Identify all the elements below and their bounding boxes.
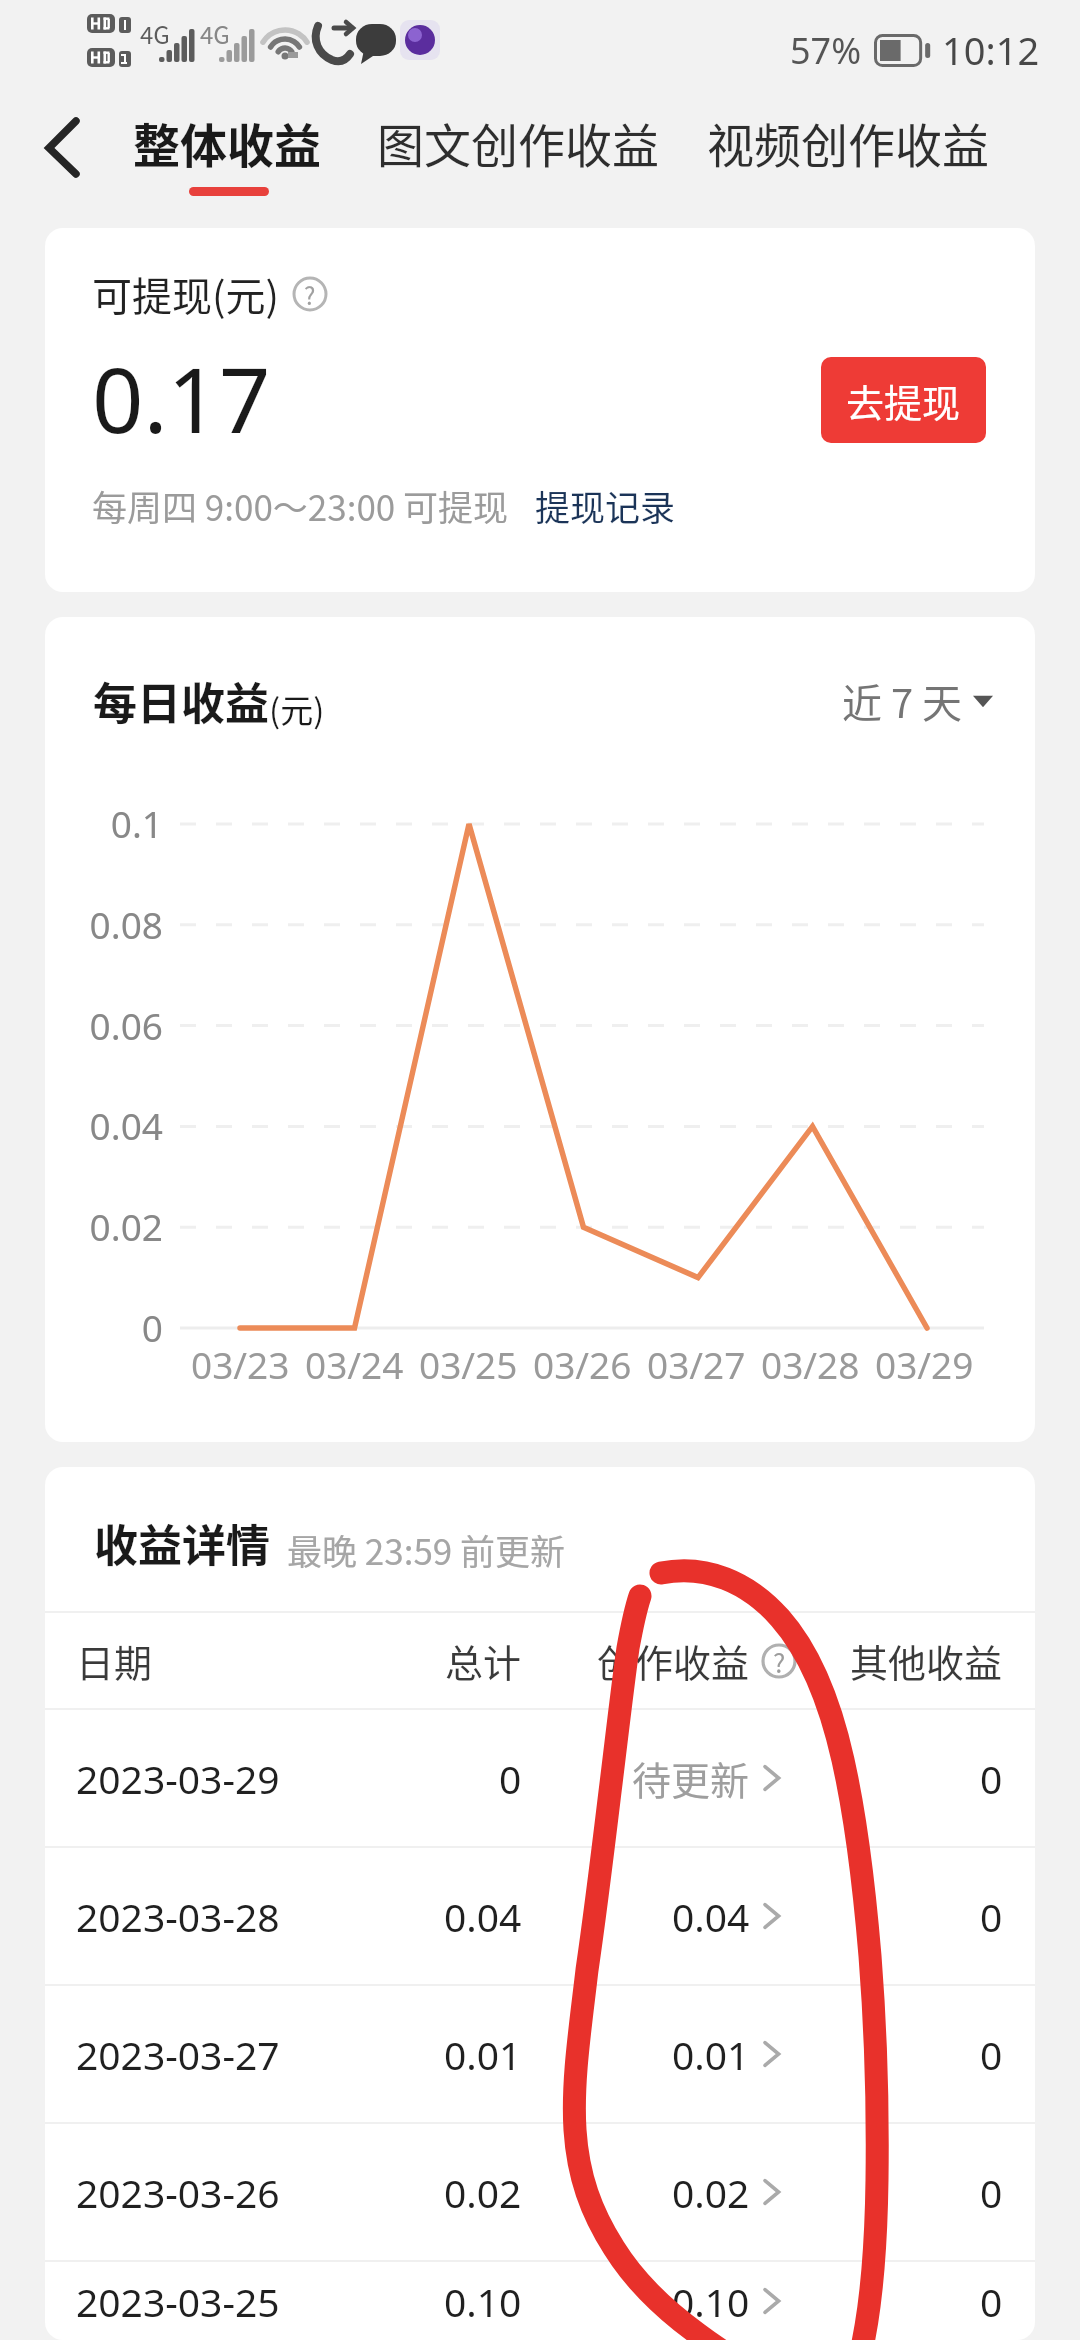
staticText: 0.10 <box>672 2275 750 2328</box>
button[interactable]: 日期 <box>45 1613 1035 1708</box>
staticText: 0 <box>980 2028 1003 2081</box>
staticText: 0 <box>980 1752 1003 1805</box>
staticText: 2023-03-25 <box>76 2275 280 2328</box>
staticText: 03/28 <box>761 1339 860 1389</box>
button[interactable]: 视频创作收益 <box>707 108 989 176</box>
staticText: 0 <box>980 2275 1003 2328</box>
staticText: 2023-03-27 <box>76 2028 280 2081</box>
staticText: 每日收益 <box>93 669 269 733</box>
button[interactable]: 2023-03-25 <box>45 2262 1035 2340</box>
staticText: 03/25 <box>419 1339 518 1389</box>
staticText: 2023-03-29 <box>76 1752 280 1805</box>
staticText: 0.01 <box>672 2028 750 2081</box>
staticText: 0.10 <box>444 2275 522 2328</box>
staticText: 其他收益 <box>850 1633 1003 1688</box>
button[interactable]: 近 7 天 <box>842 672 993 730</box>
staticText: 4G <box>200 16 230 51</box>
staticText: 0.1 <box>45 798 163 848</box>
staticText: 0 <box>980 2166 1003 2219</box>
staticText: 近 7 天 <box>842 672 963 730</box>
staticText: (元) <box>269 685 325 733</box>
staticText: 0.04 <box>444 1890 522 1943</box>
staticText: 03/23 <box>191 1339 290 1389</box>
staticText: 10:12 <box>942 24 1040 76</box>
staticText: 57% <box>790 26 862 75</box>
staticText: 0.02 <box>672 2166 750 2219</box>
staticText: 创作收益 <box>597 1633 750 1688</box>
staticText: 0.06 <box>45 1000 163 1050</box>
staticText: 0.04 <box>672 1890 750 1943</box>
staticText: 去提现 <box>846 373 961 428</box>
staticText: 总计 <box>445 1633 522 1688</box>
button[interactable]: 2023-03-26 <box>45 2124 1035 2260</box>
button[interactable]: 图文创作收益 <box>377 108 659 176</box>
staticText: 日期 <box>76 1633 153 1688</box>
staticText: 2023-03-26 <box>76 2166 280 2219</box>
staticText: 可提现(元) <box>92 265 280 323</box>
staticText: 0.02 <box>45 1201 163 1251</box>
staticText: 03/24 <box>305 1339 404 1389</box>
staticText: 0.02 <box>444 2166 522 2219</box>
staticText: 0.01 <box>444 2028 522 2081</box>
staticText: 0 <box>499 1752 522 1805</box>
staticText: ? <box>773 1643 786 1679</box>
staticText: 2023-03-28 <box>76 1890 280 1943</box>
staticText: 0 <box>980 1890 1003 1943</box>
staticText: 0.08 <box>45 899 163 949</box>
button[interactable]: 2023-03-29 <box>45 1710 1035 1846</box>
button[interactable]: 2023-03-27 <box>45 1986 1035 2122</box>
staticText: 0.04 <box>45 1100 163 1150</box>
staticText: 03/27 <box>647 1339 746 1389</box>
button[interactable]: Back <box>24 107 104 187</box>
button[interactable]: 2023-03-28 <box>45 1848 1035 1984</box>
staticText: 待更新 <box>632 1750 750 1806</box>
button[interactable]: 提现记录 <box>535 480 676 531</box>
staticText: 最晚 23:59 前更新 <box>287 1524 566 1575</box>
staticText: 收益详情 <box>94 1511 270 1575</box>
staticText: ? <box>304 277 316 312</box>
staticText: 每周四 9:00～23:00 可提现 <box>92 480 509 531</box>
staticText: 0.17 <box>92 337 271 460</box>
button[interactable]: 去提现 <box>821 357 986 443</box>
button[interactable]: 整体收益 <box>133 108 321 176</box>
staticText: 4G <box>140 16 170 51</box>
button[interactable]: Help <box>292 276 328 312</box>
staticText: 0 <box>45 1302 163 1352</box>
staticText: 03/29 <box>875 1339 974 1389</box>
staticText: 整体收益 <box>133 108 321 176</box>
staticText: 03/26 <box>533 1339 632 1389</box>
